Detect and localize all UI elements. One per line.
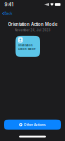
staticText: Other Actions — [24, 123, 46, 127]
staticText: Back — [5, 11, 13, 16]
staticText: November 24, Jul 2023 — [14, 28, 50, 32]
staticText: Orientation Action Mode — [8, 22, 57, 27]
staticText: 9:41 — [4, 2, 13, 7]
button[interactable]: Other Actions — [4, 120, 61, 130]
staticText: Orientation — [18, 44, 33, 47]
button[interactable]: Back — [0, 9, 15, 18]
staticText: Action Mode — [18, 47, 35, 51]
